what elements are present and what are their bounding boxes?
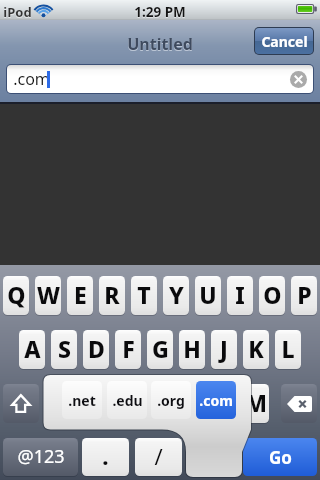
button[interactable]: Clear text — [290, 71, 307, 88]
staticText: C — [121, 387, 136, 418]
button[interactable]: G — [147, 330, 173, 369]
staticText: iPod — [3, 3, 32, 21]
staticText: A — [24, 333, 41, 364]
button[interactable]: A — [19, 330, 45, 369]
button[interactable]: .org — [151, 381, 191, 419]
staticText: T — [137, 279, 151, 310]
button[interactable]: E — [67, 276, 93, 315]
button[interactable]: Z — [51, 384, 77, 423]
staticText: Y — [169, 279, 184, 310]
button[interactable]: H — [179, 330, 205, 369]
staticText: P — [297, 279, 312, 310]
staticText: R — [104, 279, 120, 310]
button[interactable]: .com — [196, 381, 236, 419]
button[interactable]: . — [82, 438, 129, 476]
staticText: M — [245, 387, 267, 418]
staticText: .edu — [112, 391, 143, 410]
staticText: I — [235, 279, 245, 310]
staticText: D — [88, 333, 105, 364]
button[interactable]: X — [83, 384, 109, 423]
button[interactable]: R — [99, 276, 125, 315]
button[interactable]: L — [275, 330, 301, 369]
staticText: E — [74, 279, 87, 310]
button[interactable]: Cancel — [255, 28, 313, 54]
staticText: @123 — [17, 444, 65, 469]
button[interactable]: I — [227, 276, 253, 315]
staticText: S — [58, 333, 71, 364]
staticText: Cancel — [261, 32, 308, 51]
staticText: F — [122, 333, 135, 364]
staticText: N — [215, 387, 234, 418]
button[interactable]: Backspace — [281, 384, 317, 423]
staticText: .net — [68, 391, 96, 410]
staticText: / — [154, 441, 163, 471]
button[interactable]: Y — [163, 276, 189, 315]
staticText: G — [152, 333, 169, 364]
staticText: .org — [157, 391, 185, 410]
button[interactable]: S — [51, 330, 77, 369]
button[interactable]: Space — [186, 438, 240, 476]
button[interactable]: T — [131, 276, 157, 315]
button[interactable]: J — [211, 330, 237, 369]
staticText: V — [152, 387, 168, 418]
staticText: L — [281, 333, 295, 364]
button[interactable]: V — [147, 384, 173, 423]
button[interactable]: .com — [7, 65, 313, 93]
staticText: iPod — [3, 4, 32, 22]
button[interactable]: C — [115, 384, 141, 423]
staticText: H — [183, 333, 201, 364]
staticText: B — [184, 387, 200, 418]
staticText: W — [37, 279, 60, 310]
staticText: X — [88, 387, 104, 418]
button[interactable]: Q — [3, 276, 29, 315]
staticText: Z — [57, 387, 71, 418]
staticText: 1:29 PM — [134, 4, 186, 22]
staticText: . — [102, 441, 109, 471]
staticText: O — [263, 279, 282, 310]
button[interactable]: K — [243, 330, 269, 369]
button[interactable]: B — [179, 384, 205, 423]
staticText: K — [248, 333, 264, 364]
button[interactable]: @123 — [3, 438, 78, 476]
button[interactable]: Shift — [3, 384, 39, 423]
staticText: .com — [199, 391, 233, 410]
button[interactable]: F — [115, 330, 141, 369]
staticText: .com — [13, 68, 50, 90]
staticText: J — [220, 333, 228, 364]
button[interactable]: D — [83, 330, 109, 369]
button[interactable]: .net — [62, 381, 102, 419]
button[interactable]: U — [195, 276, 221, 315]
staticText: Untitled — [0, 34, 320, 56]
staticText: Untitled — [0, 33, 320, 55]
staticText: U — [199, 279, 217, 310]
button[interactable]: Go — [243, 438, 317, 476]
button[interactable]: .edu — [107, 381, 147, 419]
button[interactable]: W — [35, 276, 61, 315]
staticText: Go — [269, 446, 292, 469]
button[interactable]: N — [211, 384, 237, 423]
staticText: Q — [7, 279, 26, 310]
staticText: 1:29 PM — [134, 3, 186, 21]
button[interactable]: P — [291, 276, 317, 315]
button[interactable]: / — [135, 438, 182, 476]
button[interactable]: M — [243, 384, 269, 423]
button[interactable]: O — [259, 276, 285, 315]
